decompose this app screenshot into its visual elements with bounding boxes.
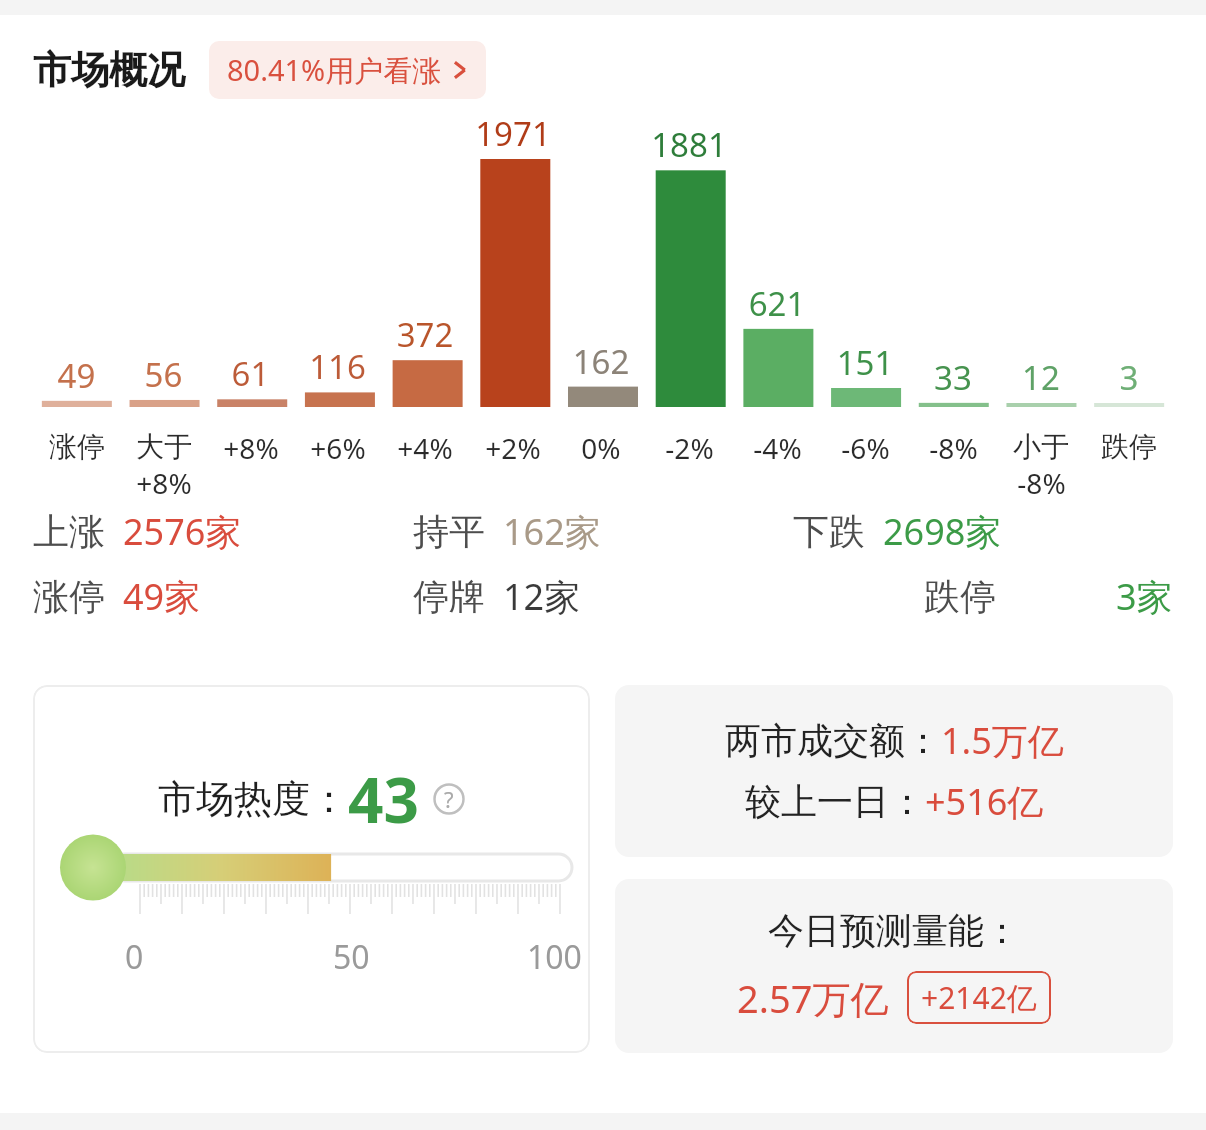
staticText: 停牌 (413, 574, 485, 619)
staticText: 61 (207, 351, 294, 396)
staticText: 1971 (469, 111, 557, 156)
staticText: 100 (527, 935, 582, 979)
staticText: +4% (397, 429, 453, 467)
staticText: 上涨 (33, 509, 105, 554)
staticText: 较上一日： (745, 779, 925, 824)
staticText: 116 (294, 344, 381, 389)
staticText: -2% (665, 429, 714, 467)
staticText: 162 (557, 339, 645, 384)
staticText: 今日预测量能： (768, 908, 1020, 953)
staticText: 12家 (503, 572, 581, 621)
staticText: 3家 (1116, 572, 1173, 621)
staticText: 1.5万亿 (941, 716, 1064, 765)
staticText: 涨停 (49, 429, 105, 464)
button[interactable]: 80.41%用户看涨 (209, 41, 486, 99)
staticText: 市场热度： (158, 775, 348, 823)
staticText: +2% (485, 429, 541, 467)
staticText: 80.41%用户看涨 (227, 50, 442, 90)
staticText: 621 (733, 281, 821, 326)
staticText: -4% (753, 429, 802, 467)
staticText: 49家 (123, 572, 201, 621)
staticText: 2576家 (123, 507, 242, 556)
staticText: 33 (909, 355, 997, 400)
button[interactable]: 帮助 (433, 783, 465, 815)
staticText: 市场概况 (33, 46, 185, 94)
staticText: 151 (821, 340, 909, 385)
staticText: 大于 (136, 429, 192, 464)
staticText: +2142亿 (921, 977, 1037, 1018)
staticText: 持平 (413, 509, 485, 554)
staticText: -8% (929, 429, 978, 467)
staticText: 两市成交额： (725, 718, 941, 763)
staticText: 下跌 (793, 509, 865, 554)
staticText: 1881 (645, 122, 733, 167)
staticText: 50 (333, 935, 370, 979)
staticText: +516亿 (925, 777, 1044, 826)
staticText: 2698家 (883, 507, 1002, 556)
staticText: +8% (223, 429, 279, 467)
staticText: 跌停 (1101, 429, 1157, 464)
button[interactable]: 今日预测量能： (615, 879, 1173, 1053)
staticText: 0 (125, 935, 144, 979)
staticText: -6% (841, 429, 890, 467)
staticText: +8% (136, 464, 192, 502)
button[interactable]: 市场热度： (33, 685, 590, 1053)
staticText: 56 (120, 352, 207, 397)
staticText: 162家 (503, 507, 601, 556)
staticText: +6% (310, 429, 366, 467)
staticText: -8% (1017, 464, 1066, 502)
staticText: 2.57万亿 (737, 972, 889, 1024)
staticText: 43 (348, 757, 419, 841)
button[interactable]: 两市成交额： (615, 685, 1173, 857)
staticText: 3 (1085, 355, 1173, 400)
staticText: ? (444, 784, 454, 814)
staticText: 涨停 (33, 574, 105, 619)
staticText: 49 (33, 353, 120, 398)
staticText: 跌停 (924, 574, 996, 619)
staticText: 12 (997, 355, 1085, 400)
staticText: 372 (381, 312, 469, 357)
staticText: 0% (581, 429, 621, 467)
staticText: 小于 (1013, 429, 1069, 464)
